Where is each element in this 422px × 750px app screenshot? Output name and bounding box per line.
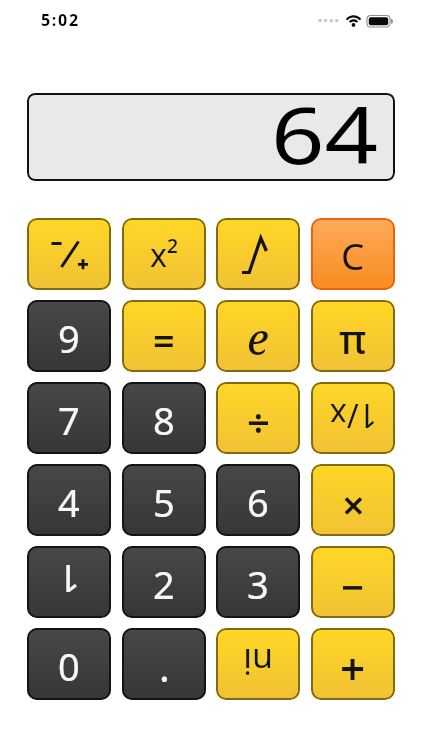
staticText: ÷ xyxy=(247,395,270,449)
button[interactable]: 0 xyxy=(27,628,111,700)
button[interactable]: 8 xyxy=(122,382,206,454)
staticText: 6 xyxy=(247,476,269,528)
button[interactable]: 1/x xyxy=(311,382,395,454)
button[interactable]: x² xyxy=(122,218,206,290)
button[interactable]: 7 xyxy=(27,382,111,454)
button[interactable]: 6 xyxy=(216,464,300,536)
button[interactable]: 3 xyxy=(216,546,300,618)
staticText: 0 xyxy=(58,640,80,692)
button[interactable]: 4 xyxy=(27,464,111,536)
staticText: e xyxy=(247,308,269,368)
staticText: . xyxy=(159,639,170,693)
button[interactable]: π xyxy=(311,300,395,372)
staticText: ni xyxy=(243,639,273,685)
staticText: × xyxy=(342,477,365,531)
button[interactable]: 9 xyxy=(27,300,111,372)
staticText: 9 xyxy=(58,312,80,364)
staticText: + xyxy=(340,638,366,698)
staticText: 1/x xyxy=(329,394,377,438)
button[interactable]: − xyxy=(311,546,395,618)
button[interactable]: . xyxy=(122,628,206,700)
staticText: 7 xyxy=(58,394,80,446)
button[interactable]: 1 xyxy=(27,546,111,618)
staticText: C xyxy=(341,230,365,280)
staticText: 5:02 xyxy=(41,9,80,31)
staticText: 3 xyxy=(247,558,269,610)
staticText: x² xyxy=(150,233,179,277)
button[interactable]: 64 xyxy=(27,93,395,181)
staticText: 2 xyxy=(153,558,175,610)
button[interactable]: ni xyxy=(216,628,300,700)
button[interactable]: e xyxy=(216,300,300,372)
button[interactable]: ÷ xyxy=(216,382,300,454)
staticText: 5 xyxy=(153,476,175,528)
button[interactable] xyxy=(27,218,111,290)
button[interactable]: = xyxy=(122,300,206,372)
staticText: 8 xyxy=(153,394,175,446)
staticText: 4 xyxy=(58,476,80,528)
staticText: π xyxy=(339,311,367,365)
staticText: 64 xyxy=(271,93,379,169)
staticText: = xyxy=(153,314,175,366)
staticText: 1 xyxy=(58,554,80,606)
button[interactable]: + xyxy=(311,628,395,700)
staticText: − xyxy=(341,559,365,613)
button[interactable]: × xyxy=(311,464,395,536)
button[interactable] xyxy=(216,218,300,290)
button[interactable]: 5 xyxy=(122,464,206,536)
button[interactable]: C xyxy=(311,218,395,290)
button[interactable]: 2 xyxy=(122,546,206,618)
